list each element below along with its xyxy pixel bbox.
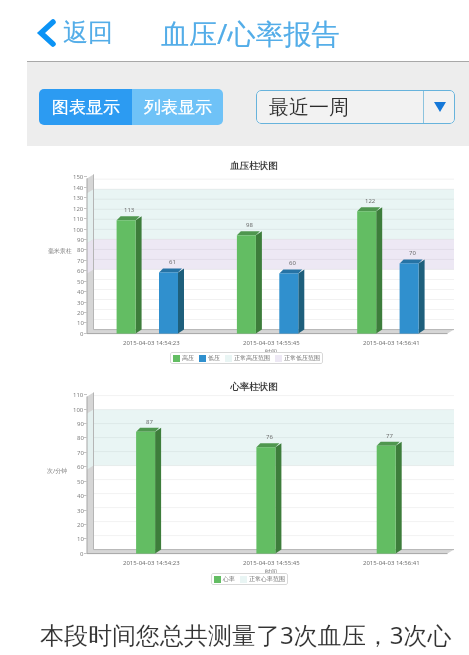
button[interactable]: 列表显示 <box>132 89 223 125</box>
staticText: 0 <box>80 330 84 338</box>
staticText: 60 <box>77 463 84 471</box>
staticText: 120 <box>73 205 84 213</box>
staticText: 心率柱状图 <box>230 381 278 393</box>
staticText: 100 <box>73 406 84 414</box>
staticText: 50 <box>77 478 84 486</box>
staticText: 20 <box>77 521 84 529</box>
staticText: 40 <box>77 288 84 296</box>
button[interactable]: 图表显示 <box>39 89 132 125</box>
staticText: 70 <box>77 257 84 265</box>
staticText: 正常高压范围 <box>234 354 270 362</box>
staticText: 122 <box>365 197 376 205</box>
staticText: 20 <box>77 309 84 317</box>
staticText: 40 <box>77 492 84 500</box>
staticText: 61 <box>169 258 176 266</box>
staticText: 100 <box>73 226 84 234</box>
staticText: 低压 <box>208 354 220 362</box>
staticText: 110 <box>73 391 84 399</box>
staticText: 30 <box>77 299 84 307</box>
staticText: 时间 <box>265 348 277 356</box>
staticText: 50 <box>77 278 84 286</box>
staticText: 血压柱状图 <box>230 160 278 172</box>
staticText: 60 <box>289 259 296 267</box>
staticText: 140 <box>73 184 84 192</box>
staticText: 0 <box>80 550 84 558</box>
staticText: 30 <box>77 507 84 515</box>
staticText: 列表显示 <box>144 97 212 118</box>
staticText: 2015-04-03 14:55:45 <box>243 339 300 347</box>
staticText: 130 <box>73 194 84 202</box>
button[interactable]: 最近一周 <box>256 90 455 124</box>
staticText: 113 <box>124 206 135 214</box>
staticText: 正常低压范围 <box>284 354 320 362</box>
staticText: 返回 <box>63 17 113 48</box>
staticText: 10 <box>77 535 84 543</box>
staticText: 时间 <box>265 568 277 576</box>
staticText: 77 <box>386 432 393 440</box>
staticText: 10 <box>77 319 84 327</box>
staticText: 最近一周 <box>269 95 349 120</box>
staticText: 70 <box>77 449 84 457</box>
staticText: 70 <box>409 249 416 257</box>
staticText: 90 <box>77 236 84 244</box>
staticText: 2015-04-03 14:55:45 <box>243 559 300 567</box>
staticText: 2015-04-03 14:54:23 <box>123 339 180 347</box>
staticText: 87 <box>146 418 153 426</box>
staticText: 98 <box>246 221 253 229</box>
staticText: 2015-04-03 14:56:41 <box>363 339 420 347</box>
button[interactable]: 返回 <box>34 11 117 54</box>
staticText: 图表显示 <box>52 97 120 118</box>
staticText: 高压 <box>182 354 194 362</box>
staticText: 80 <box>77 246 84 254</box>
staticText: 本段时间您总共测量了3次血压，3次心 <box>40 618 452 651</box>
staticText: 心率 <box>223 575 235 583</box>
staticText: 次/分钟 <box>47 467 68 475</box>
staticText: 150 <box>73 173 84 181</box>
staticText: 110 <box>73 215 84 223</box>
staticText: 正常心率范围 <box>249 575 285 583</box>
staticText: 毫米汞柱 <box>48 247 72 255</box>
staticText: 2015-04-03 14:54:23 <box>123 559 180 567</box>
staticText: 90 <box>77 420 84 428</box>
staticText: 80 <box>77 434 84 442</box>
staticText: 2015-04-03 14:56:41 <box>363 559 420 567</box>
staticText: 60 <box>77 267 84 275</box>
other: 返回 <box>38 20 55 46</box>
staticText: 76 <box>266 433 273 441</box>
staticText: 血压/心率报告 <box>161 14 340 52</box>
